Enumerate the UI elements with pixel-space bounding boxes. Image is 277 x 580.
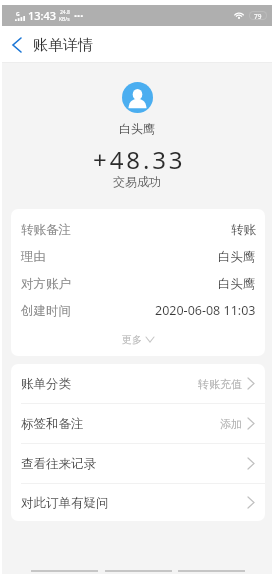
staticText: 白头鹰 <box>218 276 256 292</box>
staticText: 账单分类 <box>21 376 71 392</box>
staticText: 创建时间 <box>21 303 71 319</box>
staticText: KB/s <box>59 16 70 23</box>
button[interactable]: Navigation <box>178 566 245 576</box>
staticText: 转账备注 <box>21 222 71 238</box>
button[interactable]: 更多 <box>11 324 265 354</box>
button[interactable]: 查看往来记录 <box>11 444 265 484</box>
staticText: 13:43 <box>28 8 57 23</box>
staticText: 2020-06-08 11:03 <box>155 302 256 319</box>
staticText: 24.8 <box>60 9 70 16</box>
staticText: ··· <box>74 8 84 23</box>
staticText: G <box>16 11 20 18</box>
button[interactable]: 标签和备注 <box>11 404 265 444</box>
staticText: +48.33 <box>93 143 186 176</box>
staticText: 对此订单有疑问 <box>21 495 109 511</box>
button[interactable]: Navigation <box>105 566 172 576</box>
staticText: 白头鹰 <box>218 249 256 265</box>
staticText: 白头鹰 <box>119 121 155 136</box>
staticText: 理由 <box>21 249 46 265</box>
staticText: 对方账户 <box>21 276 71 292</box>
button[interactable]: 账单分类 <box>11 364 265 404</box>
staticText: 查看往来记录 <box>21 456 96 472</box>
button[interactable]: Back <box>2 30 32 60</box>
staticText: 标签和备注 <box>21 416 84 432</box>
staticText: 添加 <box>220 417 242 431</box>
staticText: 转账充值 <box>198 377 242 391</box>
staticText: 79 <box>254 12 262 19</box>
button[interactable]: 对此订单有疑问 <box>11 484 265 521</box>
button[interactable]: Navigation <box>31 566 98 576</box>
staticText: 更多 <box>122 333 142 346</box>
staticText: 交易成功 <box>113 174 161 189</box>
staticText: 账单详情 <box>33 36 93 55</box>
staticText: 转账 <box>231 222 256 238</box>
